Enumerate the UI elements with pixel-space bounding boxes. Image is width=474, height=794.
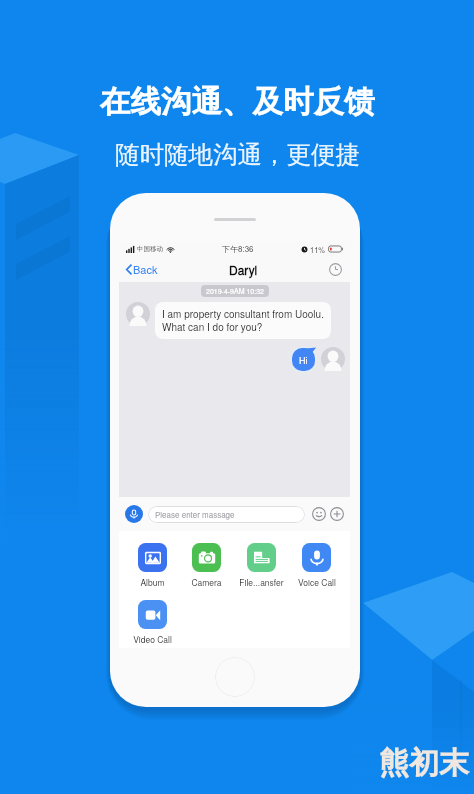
staticText: Camera: [191, 576, 222, 588]
staticText: 11%: [310, 244, 326, 255]
staticText: Video Call: [133, 633, 172, 645]
button[interactable]: Voice Call: [289, 543, 344, 588]
staticText: 2019-4-9AM 10:32: [206, 286, 264, 296]
staticText: Voice Call: [298, 576, 336, 588]
staticText: 中国移动: [137, 245, 163, 253]
staticText: 在线沟通、及时反馈: [100, 83, 375, 121]
button[interactable]: File...ansfer: [234, 543, 289, 588]
staticText: Daryl: [229, 261, 258, 278]
button[interactable]: Back: [124, 257, 160, 281]
button[interactable]: Album: [125, 543, 179, 588]
button[interactable]: Voice input: [125, 505, 143, 523]
button[interactable]: History: [327, 261, 344, 278]
staticText: 随时随地沟通，更便捷: [115, 139, 360, 170]
button[interactable]: Add: [330, 507, 344, 521]
staticText: 熊初末: [379, 744, 469, 782]
staticText: File...ansfer: [239, 576, 284, 588]
staticText: Hi: [299, 354, 308, 367]
button[interactable]: Please enter massage: [148, 506, 305, 523]
button[interactable]: Camera: [179, 543, 234, 588]
staticText: Back: [133, 261, 158, 277]
button[interactable]: Video Call: [125, 600, 180, 645]
staticText: Please enter massage: [155, 509, 235, 520]
button[interactable]: Emoji: [312, 507, 326, 521]
staticText: Album: [140, 576, 165, 588]
staticText: 下午8:36: [222, 243, 254, 255]
staticText: I am property consultant from Uoolu. Wha…: [162, 307, 324, 334]
